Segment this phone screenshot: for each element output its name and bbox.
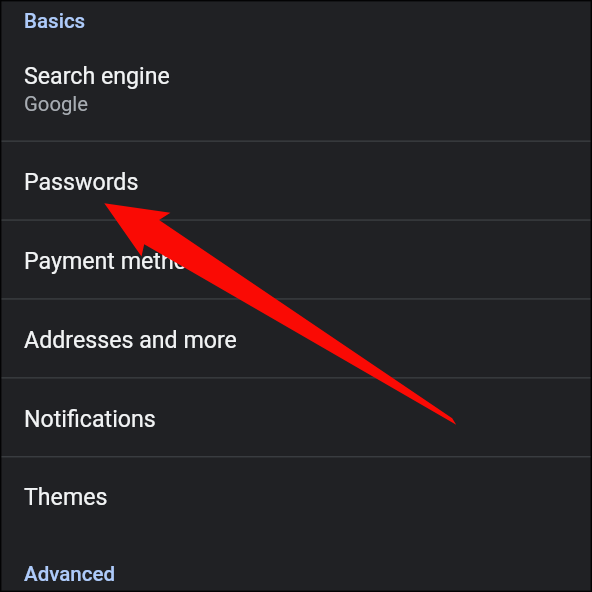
button[interactable]: Addresses and more [0, 300, 592, 379]
button[interactable]: Passwords [0, 142, 592, 221]
staticText: Payment methods [24, 247, 212, 274]
button[interactable]: Payment methods [0, 221, 592, 300]
button[interactable]: Themes [0, 457, 592, 536]
staticText: Google [24, 92, 89, 116]
button[interactable]: Notifications [0, 379, 592, 458]
staticText: Notifications [24, 405, 156, 432]
staticText: Addresses and more [24, 326, 237, 353]
staticText: Themes [24, 483, 108, 510]
staticText: Basics [24, 9, 86, 33]
staticText: Search engine [24, 62, 170, 89]
staticText: Advanced [24, 562, 116, 586]
button[interactable]: Search engine [0, 38, 592, 140]
staticText: Passwords [24, 168, 139, 195]
